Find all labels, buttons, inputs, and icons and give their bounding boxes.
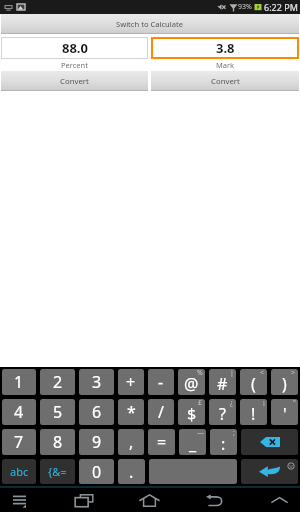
button[interactable]: Enter: [241, 459, 298, 484]
staticText: #: [217, 373, 228, 395]
staticText: 2: [53, 371, 63, 393]
staticText: Switch to Calculate: [116, 19, 184, 29]
staticText: £: [198, 399, 203, 408]
staticText: *: [127, 401, 136, 423]
staticText: ": [293, 399, 296, 408]
staticText: 3: [92, 371, 102, 393]
button[interactable]: 2: [40, 369, 75, 395]
staticText: <: [260, 369, 265, 378]
staticText: >: [291, 369, 296, 378]
button[interactable]: (: [240, 369, 267, 395]
button[interactable]: {&=: [40, 459, 75, 484]
staticText: !: [251, 403, 256, 425]
button[interactable]: -: [148, 369, 174, 395]
button[interactable]: 88.0: [1, 37, 148, 59]
staticText: ¿: [230, 399, 234, 408]
button[interactable]: 4: [2, 399, 36, 425]
staticText: 88.0: [62, 39, 88, 57]
button[interactable]: *: [118, 399, 144, 425]
button[interactable]: 6: [79, 399, 114, 425]
button[interactable]: Space: [149, 459, 237, 484]
button[interactable]: .: [118, 459, 145, 484]
button[interactable]: 9: [79, 429, 114, 455]
button[interactable]: !: [240, 399, 267, 425]
staticText: ): [282, 373, 287, 395]
button[interactable]: Convert: [151, 71, 299, 91]
button[interactable]: 3.8: [151, 37, 299, 59]
button[interactable]: Hide keyboard: [259, 488, 299, 512]
staticText: 8: [53, 431, 63, 453]
button[interactable]: ': [271, 399, 298, 425]
button[interactable]: ): [271, 369, 298, 395]
button[interactable]: 8: [40, 429, 75, 455]
staticText: Convert: [211, 76, 240, 87]
staticText: 5: [53, 401, 63, 423]
button[interactable]: :: [210, 429, 237, 455]
button[interactable]: Back: [194, 488, 234, 512]
staticText: ,: [129, 431, 134, 453]
staticText: 4: [14, 401, 24, 423]
staticText: ': [283, 403, 287, 425]
button[interactable]: Recent apps: [64, 488, 104, 512]
staticText: (: [251, 373, 256, 395]
button[interactable]: Switch to Calculate: [1, 14, 299, 34]
staticText: Percent: [61, 60, 88, 70]
staticText: _: [189, 433, 197, 455]
staticText: Mark: [216, 60, 235, 70]
staticText: 6: [92, 401, 102, 423]
staticText: =: [157, 431, 167, 453]
staticText: $: [187, 403, 197, 425]
staticText: abc: [10, 464, 29, 479]
button[interactable]: +: [118, 369, 144, 395]
button[interactable]: $: [178, 399, 205, 425]
staticText: 7: [14, 431, 24, 453]
button[interactable]: 7: [2, 429, 36, 455]
staticText: 9: [92, 431, 102, 453]
button[interactable]: 1: [2, 369, 36, 395]
button[interactable]: 3: [79, 369, 114, 395]
staticText: 93%: [238, 2, 252, 12]
staticText: %: [197, 369, 203, 378]
button[interactable]: ?: [209, 399, 236, 425]
button[interactable]: Backspace: [241, 429, 298, 455]
staticText: ?: [219, 403, 226, 425]
button[interactable]: 5: [40, 399, 75, 425]
button[interactable]: _: [179, 429, 206, 455]
staticText: ;: [233, 429, 235, 438]
staticText: 1: [14, 371, 24, 393]
staticText: ¡: [263, 399, 265, 408]
button[interactable]: @: [178, 369, 205, 395]
button[interactable]: =: [148, 429, 175, 455]
staticText: |: [230, 369, 234, 378]
staticText: .: [129, 461, 134, 483]
staticText: 3.8: [216, 39, 235, 57]
staticText: 6:22 PM: [264, 1, 298, 13]
button[interactable]: Convert: [1, 71, 148, 91]
button[interactable]: abc: [2, 459, 36, 484]
button[interactable]: /: [148, 399, 174, 425]
button[interactable]: ,: [118, 429, 144, 455]
staticText: +: [126, 371, 136, 393]
staticText: :: [221, 433, 226, 455]
staticText: /: [158, 401, 164, 423]
staticText: -: [158, 371, 164, 393]
staticText: @: [184, 373, 199, 395]
button[interactable]: Home: [129, 488, 169, 512]
staticText: {&=: [48, 464, 67, 479]
button[interactable]: Menu: [0, 488, 39, 512]
staticText: 0: [92, 461, 102, 483]
staticText: Convert: [60, 76, 89, 87]
button[interactable]: 0: [79, 459, 114, 484]
button[interactable]: #: [209, 369, 236, 395]
staticText: —: [197, 429, 204, 438]
